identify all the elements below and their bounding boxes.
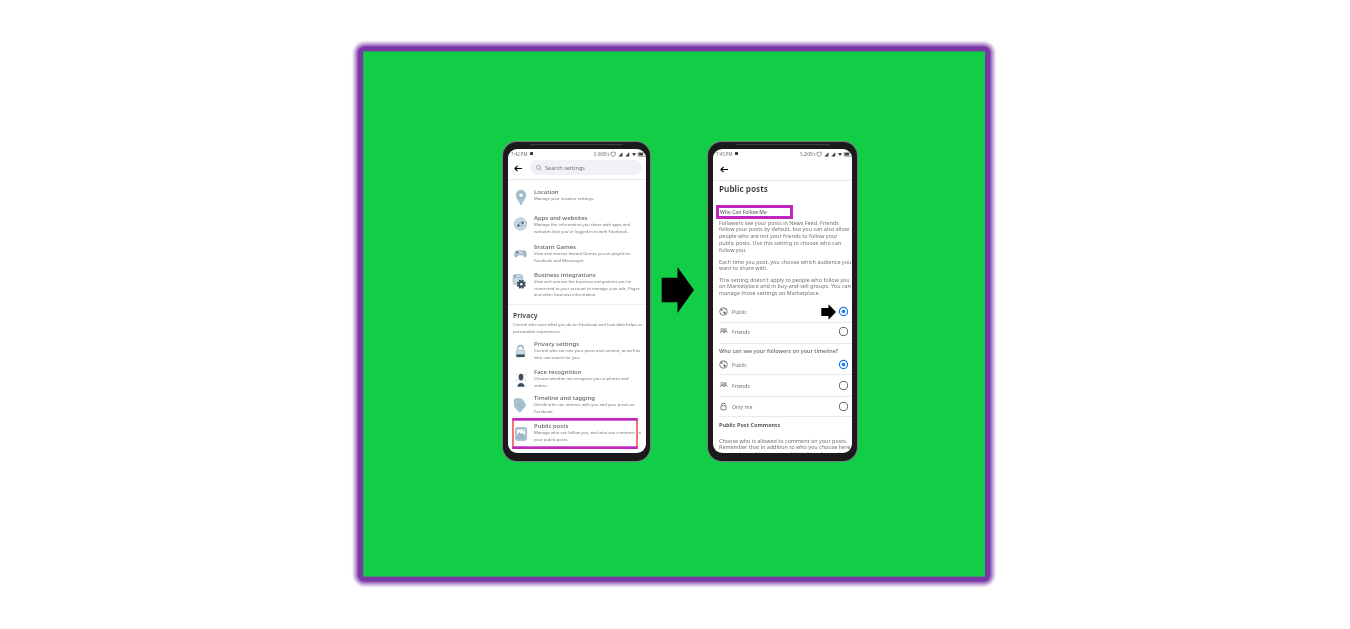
button[interactable]: Location [508, 188, 646, 203]
button[interactable]: Who Can Follow Me [716, 205, 793, 219]
staticText: Privacy settings [534, 340, 580, 348]
staticText: Who can see your followers on your timel… [719, 347, 839, 354]
staticText: Search settings [545, 164, 586, 172]
staticText: Public posts [534, 422, 569, 430]
staticText: 5.2KB/s [800, 151, 816, 157]
staticText: Location [534, 188, 559, 196]
staticText: Public [732, 308, 747, 315]
button[interactable]: Only me [713, 401, 852, 412]
staticText: Choose who is allowed to comment on your… [719, 437, 852, 453]
staticText: View and remove the business integration… [534, 279, 642, 297]
button[interactable]: Timeline and tagging [508, 394, 646, 414]
staticText: Each time you post, you choose which aud… [719, 258, 852, 272]
staticText: View and remove Instant Games you've pla… [534, 251, 642, 263]
staticText: Public [732, 361, 747, 368]
button[interactable]: Public [713, 359, 852, 370]
staticText: Business integrations [534, 271, 596, 279]
staticText: Instant Games [534, 243, 576, 251]
staticText: Control who sees what you do on Facebook… [513, 322, 646, 334]
staticText: Friends [732, 328, 750, 335]
button[interactable] [512, 418, 638, 449]
staticText: Manage your location settings. [534, 196, 595, 202]
staticText: 7:42 PM [511, 151, 528, 157]
staticText: 0.0KB/s [594, 151, 610, 157]
button[interactable]: Search settings [530, 160, 642, 175]
button[interactable]: Friends [713, 380, 852, 391]
staticText: Who Can Follow Me [720, 209, 767, 216]
staticText: Control who can see your posts and conte… [534, 348, 642, 360]
staticText: Followers see your posts in News Feed. F… [719, 219, 852, 254]
staticText: Friends [732, 382, 750, 389]
staticText: 7:43 PM [716, 151, 733, 157]
staticText: Face recognition [534, 368, 582, 376]
button[interactable]: Privacy settings [508, 340, 646, 360]
button[interactable]: Business integrations [508, 271, 646, 297]
button[interactable]: Friends [713, 326, 852, 337]
button[interactable]: Public posts [508, 422, 646, 442]
button[interactable]: Apps and websites [508, 214, 646, 234]
button[interactable]: Public [713, 306, 852, 317]
button[interactable]: Face recognition [508, 368, 646, 388]
staticText: This setting doesn't apply to people who… [719, 276, 852, 297]
staticText: Public Post Comments [719, 421, 781, 428]
staticText: Manage who can follow you, and who can c… [534, 430, 642, 442]
staticText: Manage the information you share with ap… [534, 222, 642, 234]
staticText: Only me [732, 403, 753, 410]
staticText: Privacy [513, 311, 538, 320]
staticText: Public posts [719, 183, 768, 194]
staticText: Apps and websites [534, 214, 588, 222]
staticText: Timeline and tagging [534, 394, 595, 402]
staticText: Decide who can interact with you and you… [534, 402, 642, 414]
button[interactable]: Back [716, 162, 731, 177]
staticText: Choose whether we recognise you in photo… [534, 376, 642, 388]
button[interactable]: Instant Games [508, 243, 646, 263]
button[interactable]: Back [511, 161, 525, 175]
